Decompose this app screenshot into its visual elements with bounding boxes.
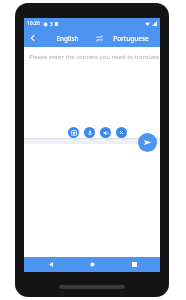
staticText: Portuguese bbox=[113, 34, 149, 43]
button[interactable]: Send bbox=[138, 133, 157, 152]
button[interactable]: Speak bbox=[100, 127, 111, 138]
button[interactable]: Recent apps bbox=[119, 257, 149, 272]
button[interactable]: Paste bbox=[68, 127, 79, 138]
staticText: Please enter the content you need to tra… bbox=[29, 53, 160, 61]
button[interactable]: Please enter the content you need to tra… bbox=[24, 47, 160, 138]
button[interactable]: Back bbox=[24, 29, 42, 47]
button[interactable]: English bbox=[44, 34, 91, 43]
staticText: English bbox=[56, 34, 79, 43]
button[interactable]: Portuguese bbox=[107, 34, 154, 43]
staticText: 10:26 bbox=[27, 20, 40, 27]
staticText: 3 bbox=[50, 21, 53, 27]
button[interactable]: Voice input bbox=[84, 127, 95, 138]
button[interactable]: Swap languages bbox=[91, 30, 107, 46]
button[interactable]: Clear bbox=[116, 127, 127, 138]
button[interactable]: Home bbox=[77, 257, 107, 272]
button[interactable]: Back bbox=[36, 257, 66, 272]
